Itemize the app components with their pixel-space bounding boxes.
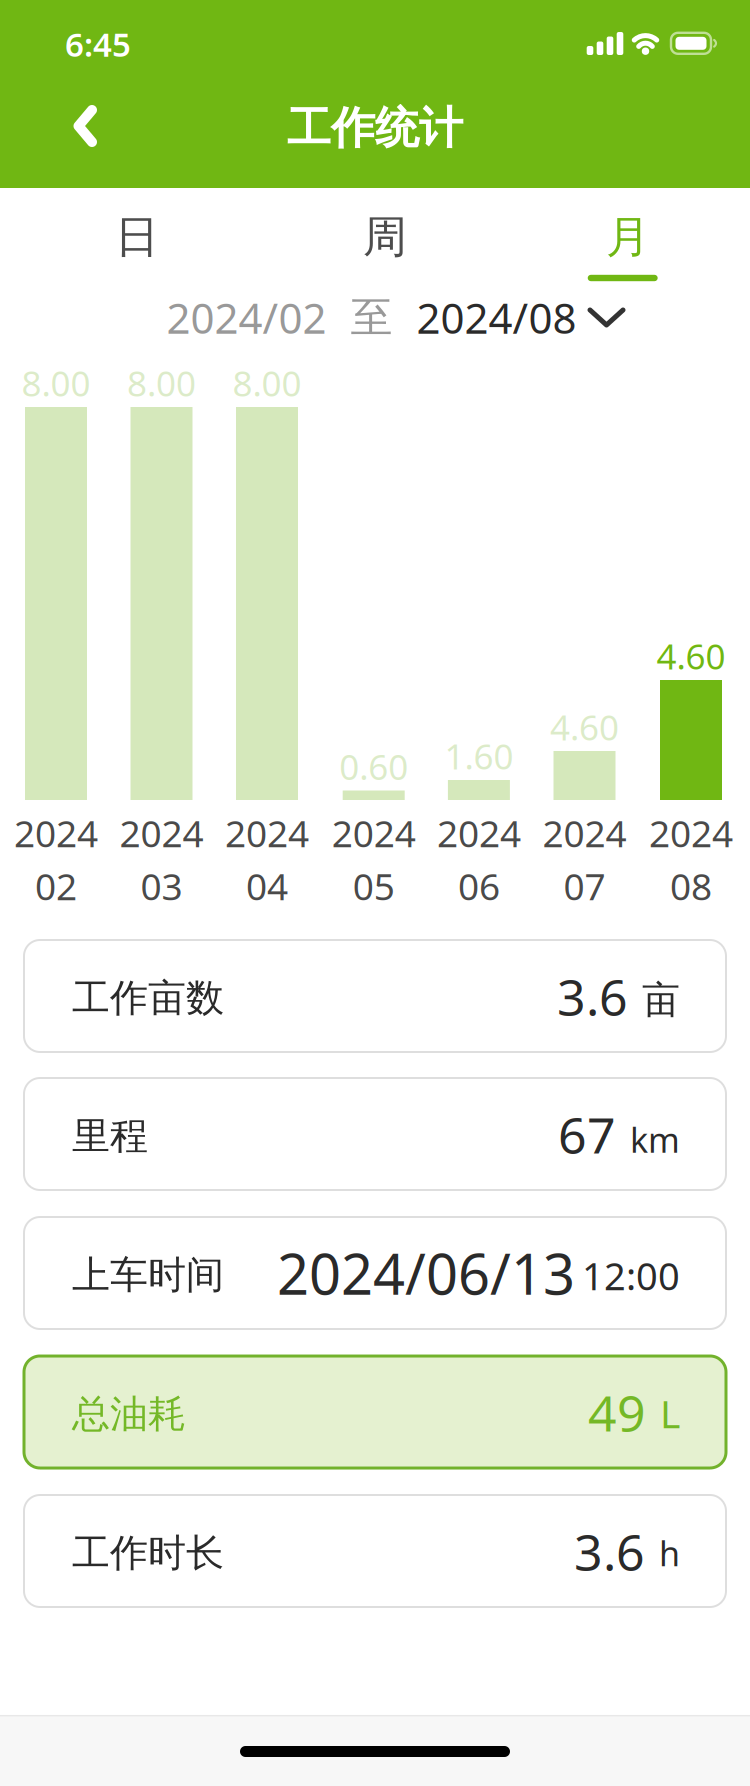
staticText: 12:00 (582, 1250, 680, 1301)
staticText: 至 (350, 292, 392, 343)
staticText: 月 (606, 210, 650, 264)
staticText: 2024 (119, 808, 203, 857)
staticText: 8.00 (127, 360, 196, 406)
staticText: 3.6 (574, 1518, 645, 1584)
staticText: 04 (246, 861, 288, 910)
button[interactable]: 月 (538, 192, 718, 282)
staticText: h (659, 1530, 680, 1576)
button[interactable]: 里程 (24, 1078, 726, 1190)
staticText: 02 (35, 861, 77, 910)
staticText: 里程 (72, 1113, 148, 1159)
staticText: 1.60 (444, 733, 513, 779)
staticText: 工作时长 (72, 1530, 224, 1576)
staticText: 2024 (332, 808, 416, 857)
staticText: km (630, 1117, 680, 1162)
staticText: L (660, 1387, 680, 1439)
staticText: 05 (353, 861, 395, 910)
staticText: 49 (588, 1379, 646, 1445)
staticText: 2024 (225, 808, 309, 857)
button[interactable]: 工作亩数 (24, 940, 726, 1052)
staticText: 亩 (642, 977, 680, 1023)
button[interactable]: 日 (47, 192, 227, 282)
staticText: 07 (563, 861, 605, 910)
staticText: 2024/06/13 (277, 1236, 575, 1310)
staticText: 3.6 (557, 963, 628, 1029)
staticText: 2024 (437, 808, 521, 857)
staticText: 0.60 (339, 743, 408, 790)
staticText: 06 (458, 861, 500, 910)
staticText: 6:45 (65, 22, 131, 66)
staticText: 08 (670, 861, 712, 910)
staticText: 8.00 (21, 360, 90, 406)
button[interactable]: 2024/02 (166, 287, 625, 347)
button[interactable]: 总油耗 (24, 1356, 726, 1468)
staticText: 4.60 (656, 633, 725, 679)
staticText: 工作亩数 (72, 975, 224, 1021)
staticText: 8.00 (232, 360, 301, 406)
staticText: 总油耗 (72, 1391, 186, 1437)
staticText: 03 (140, 861, 182, 910)
staticText: 2024 (542, 808, 626, 857)
staticText: 2024 (649, 808, 733, 857)
button[interactable]: 周 (295, 192, 475, 282)
staticText: 4.60 (550, 704, 619, 750)
staticText: 67 (558, 1101, 616, 1167)
staticText: 2024/02 (166, 290, 326, 345)
staticText: 周 (363, 210, 407, 264)
staticText: 工作统计 (287, 101, 463, 155)
staticText: 2024/08 (416, 290, 576, 345)
button[interactable]: Back (66, 97, 106, 157)
button[interactable]: 上车时间 (24, 1217, 726, 1329)
staticText: 上车时间 (72, 1252, 224, 1298)
button[interactable]: 工作时长 (24, 1495, 726, 1607)
staticText: 2024 (14, 808, 98, 857)
staticText: 日 (115, 210, 159, 264)
